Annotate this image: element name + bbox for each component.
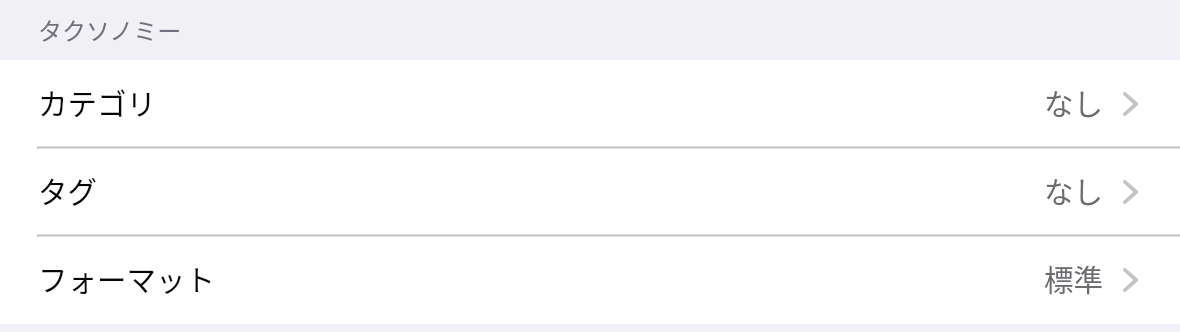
staticText: なし xyxy=(1044,169,1104,212)
button[interactable]: フォーマット xyxy=(0,236,1180,324)
other: Open カテゴリ xyxy=(1123,92,1138,116)
staticText: 標準 xyxy=(1044,257,1104,300)
other: Open タグ xyxy=(1123,180,1138,204)
button[interactable]: タグ xyxy=(0,148,1180,236)
staticText: タクソノミー xyxy=(38,12,182,47)
staticText: フォーマット xyxy=(38,257,216,300)
staticText: なし xyxy=(1044,81,1104,124)
button[interactable]: カテゴリ xyxy=(0,60,1180,148)
staticText: カテゴリ xyxy=(38,81,157,124)
staticText: タグ xyxy=(38,169,98,212)
other: Open フォーマット xyxy=(1123,268,1138,292)
